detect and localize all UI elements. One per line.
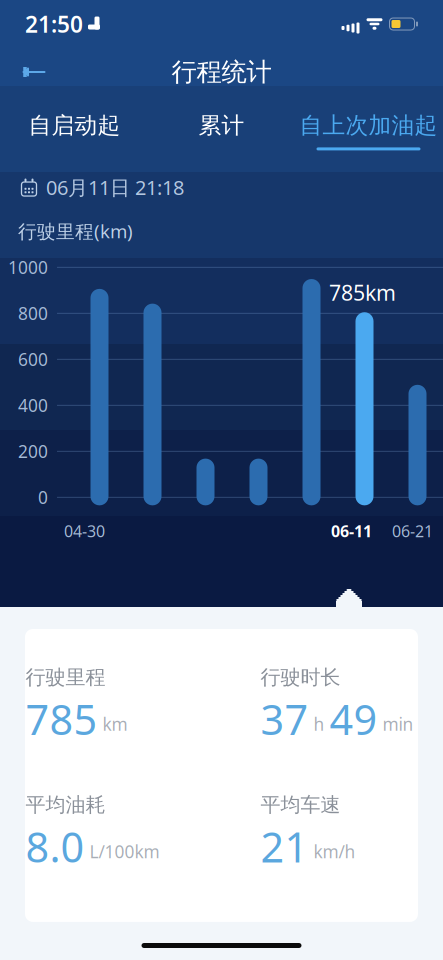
staticText: 600 xyxy=(18,348,48,371)
staticText: 行驶里程(km) xyxy=(18,219,133,243)
staticText: 200 xyxy=(18,440,48,463)
staticText: 06月11日 21:18 xyxy=(46,174,184,201)
staticText: 400 xyxy=(18,394,48,417)
staticText: 21 xyxy=(260,819,308,874)
staticText: 785km xyxy=(329,278,396,307)
staticText: 04-30 xyxy=(64,520,105,541)
staticText: 平均油耗 xyxy=(25,792,105,817)
button[interactable]: 累计 xyxy=(148,114,295,148)
staticText: 785 xyxy=(25,692,97,746)
staticText: 21:50 xyxy=(25,9,83,39)
staticText: min xyxy=(382,712,413,735)
button[interactable]: 自启动起 xyxy=(1,114,148,148)
staticText: h xyxy=(313,712,324,735)
staticText: 49 xyxy=(329,692,377,746)
staticText: 自启动起 xyxy=(28,112,120,139)
staticText: 0 xyxy=(38,486,48,509)
staticText: 8.0 xyxy=(25,819,84,874)
staticText: 行驶里程 xyxy=(25,665,105,690)
staticText: 1000 xyxy=(8,256,48,279)
staticText: 06-21 xyxy=(392,520,433,541)
staticText: 平均车速 xyxy=(260,792,340,817)
staticText: km/h xyxy=(313,840,355,863)
staticText: 自上次加油起 xyxy=(299,112,437,139)
staticText: 37 xyxy=(260,692,308,746)
staticText: 800 xyxy=(18,302,48,325)
button[interactable]: 返回 xyxy=(10,52,58,92)
staticText: 行程统计 xyxy=(171,56,271,87)
staticText: L/100km xyxy=(89,840,159,863)
staticText: km xyxy=(102,712,127,735)
button[interactable]: 自上次加油起 xyxy=(295,114,442,148)
staticText: 06-11 xyxy=(331,520,372,541)
staticText: 行驶时长 xyxy=(260,665,340,690)
staticText: 累计 xyxy=(198,112,244,139)
